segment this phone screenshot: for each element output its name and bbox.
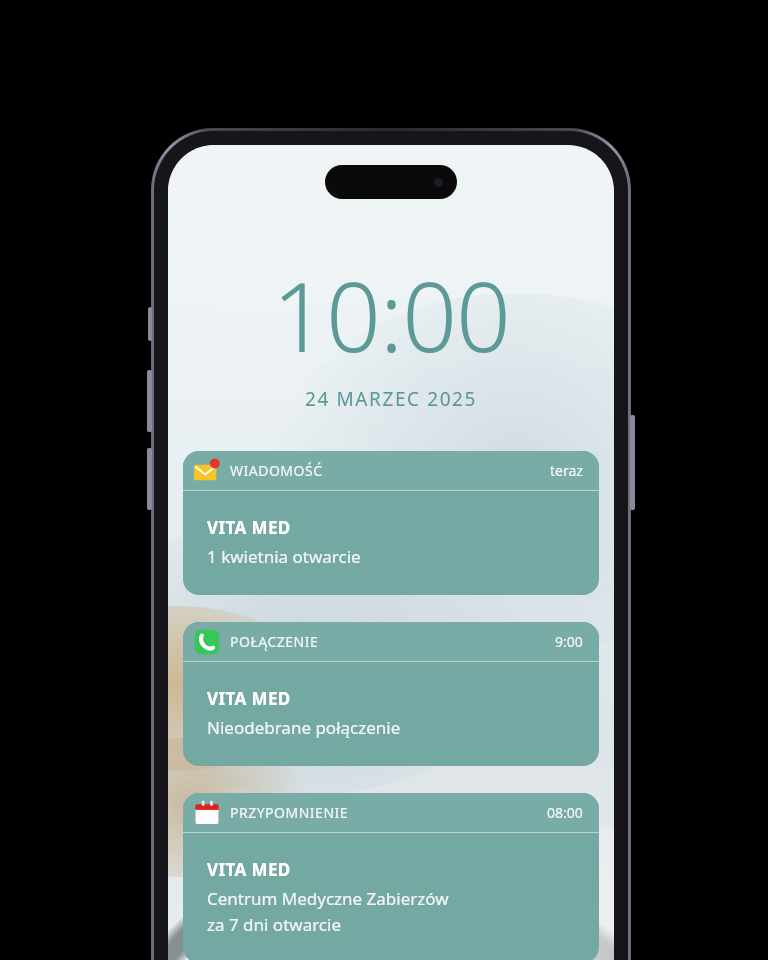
staticText: Centrum Medyczne Zabierzów <box>207 887 449 910</box>
staticText: teraz <box>550 461 583 480</box>
staticText: VITA MED <box>207 687 291 710</box>
staticText: POŁĄCZENIE <box>230 632 319 651</box>
staticText: WIADOMOŚĆ <box>230 461 323 480</box>
staticText: 10:00 <box>168 249 614 380</box>
other: Reminder <box>194 800 220 826</box>
button[interactable]: POŁĄCZENIE VITA MED <box>183 622 599 766</box>
staticText: 9:00 <box>555 632 583 651</box>
button[interactable]: WIADOMOŚĆ VITA MED <box>183 451 599 595</box>
other: Message <box>194 458 220 484</box>
staticText: 08:00 <box>547 803 583 822</box>
other: Call <box>194 629 220 655</box>
staticText: PRZYPOMNIENIE <box>230 803 349 822</box>
staticText: VITA MED <box>207 516 291 539</box>
staticText: 24 MARZEC 2025 <box>168 386 614 412</box>
staticText: VITA MED <box>207 858 291 881</box>
staticText: Nieodebrane połączenie <box>207 716 401 739</box>
button[interactable]: PRZYPOMNIENIE VITA MED <box>183 793 599 960</box>
staticText: za 7 dni otwarcie <box>207 913 341 936</box>
staticText: 1 kwietnia otwarcie <box>207 545 361 568</box>
